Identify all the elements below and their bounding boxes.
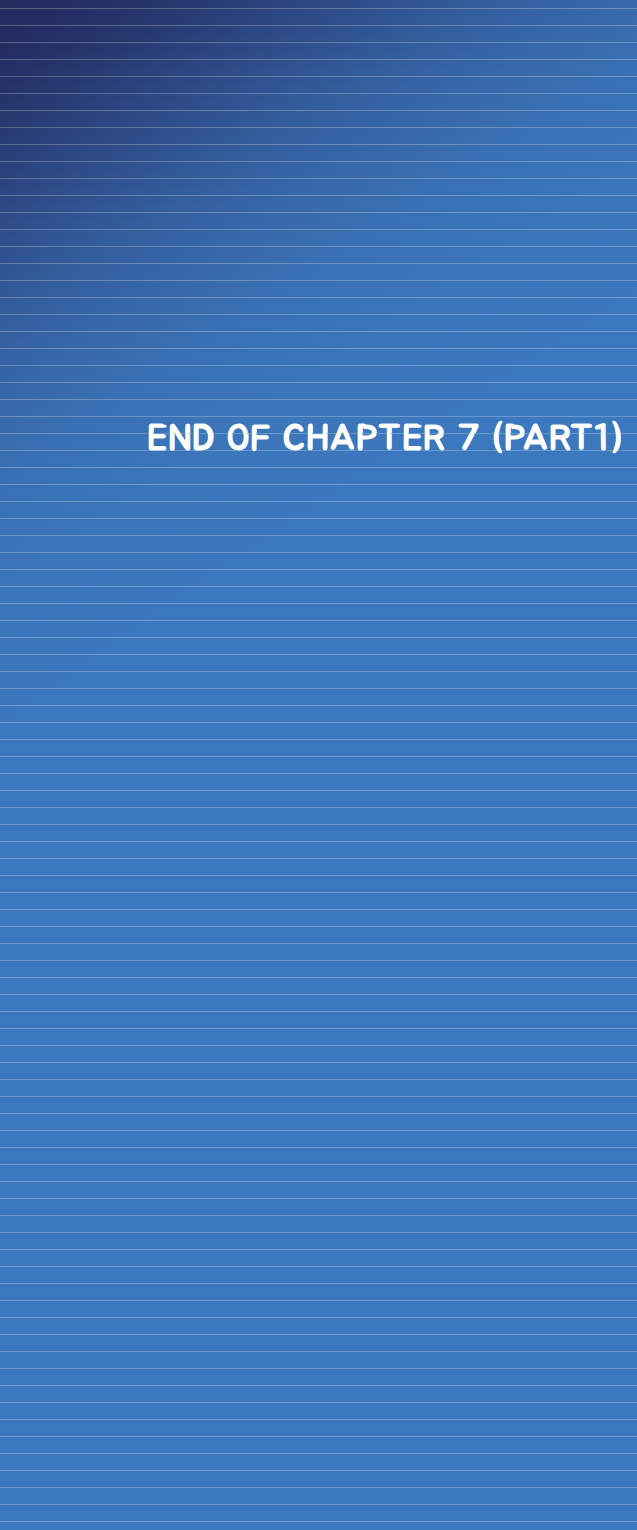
staticText: END OF CHAPTER 7 (PART1) [147, 420, 623, 458]
button[interactable]: END OF CHAPTER 7 (PART1) [0, 0, 637, 1530]
